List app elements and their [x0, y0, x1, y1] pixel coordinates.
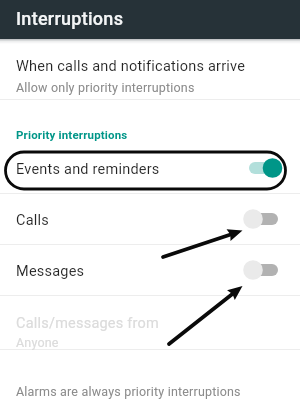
button[interactable]	[0, 40, 300, 99]
button[interactable]: Off	[244, 205, 283, 233]
button[interactable]	[0, 194, 300, 244]
staticText: Calls	[16, 212, 49, 229]
staticText: Events and reminders	[16, 161, 160, 178]
button[interactable]: On	[244, 154, 283, 182]
button[interactable]	[0, 143, 300, 193]
button[interactable]: Off	[244, 256, 283, 284]
staticText: Interruptions	[16, 8, 124, 29]
staticText: Calls/messages from	[16, 315, 159, 332]
staticText: Allow only priority interruptions	[16, 80, 195, 95]
staticText: Priority interruptions	[16, 128, 128, 141]
staticText: Anyone	[16, 335, 59, 350]
staticText: When calls and notifications arrive	[16, 58, 246, 75]
staticText: Messages	[16, 263, 85, 280]
button[interactable]	[0, 245, 300, 295]
button[interactable]	[0, 0, 300, 39]
staticText: Alarms are always priority interruptions	[16, 384, 241, 399]
